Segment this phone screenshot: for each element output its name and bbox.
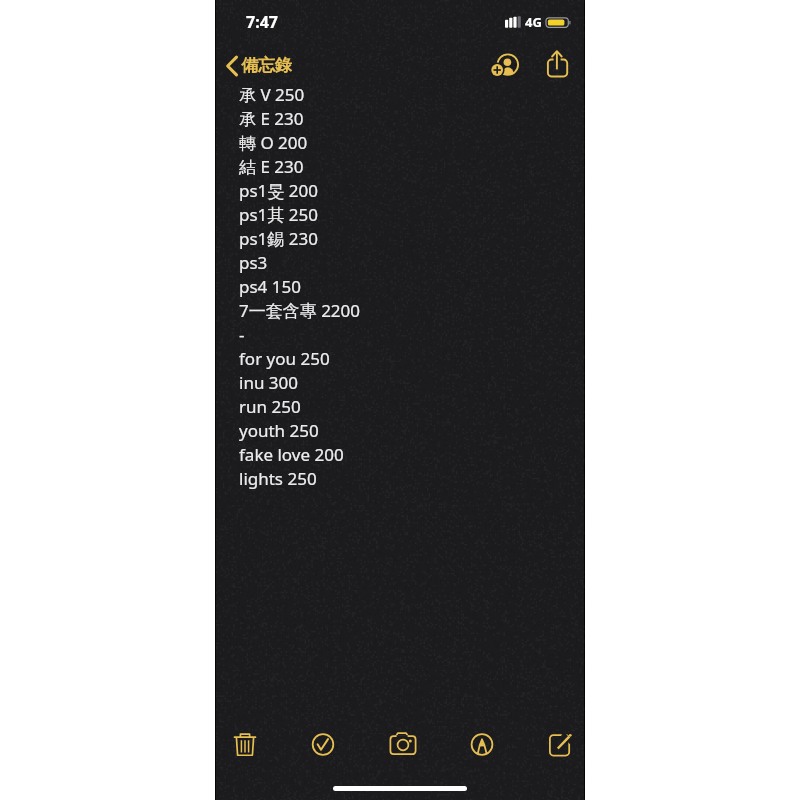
staticText: 結 E 230: [239, 155, 304, 178]
staticText: 轉 O 200: [239, 131, 308, 154]
staticText: ps1旻 200: [239, 179, 318, 202]
staticText: ps1錫 230: [239, 227, 318, 250]
staticText: -: [239, 323, 245, 346]
staticText: run 250: [239, 395, 301, 418]
staticText: 4G: [525, 13, 542, 31]
staticText: 承 V 250: [239, 83, 305, 106]
button[interactable]: Share: [538, 45, 576, 83]
staticText: fake love 200: [239, 443, 344, 466]
button[interactable]: Checklist: [305, 722, 341, 766]
staticText: for you 250: [239, 347, 330, 370]
staticText: ps4 150: [239, 275, 301, 298]
button[interactable]: Add people: [486, 45, 524, 83]
button[interactable]: Markup: [464, 722, 500, 766]
staticText: ps1其 250: [239, 203, 318, 226]
staticText: 7一套含專 2200: [239, 299, 361, 322]
button[interactable]: Delete: [227, 722, 263, 766]
button[interactable]: 備忘錄: [224, 52, 292, 80]
staticText: ps3: [239, 251, 268, 274]
button[interactable]: Camera: [385, 722, 421, 766]
staticText: lights 250: [239, 467, 317, 490]
button[interactable]: New note: [543, 722, 579, 766]
staticText: youth 250: [239, 419, 319, 442]
staticText: 承 E 230: [239, 107, 304, 130]
staticText: 備忘錄: [241, 55, 292, 76]
staticText: 7:47: [246, 11, 278, 33]
staticText: inu 300: [239, 371, 298, 394]
